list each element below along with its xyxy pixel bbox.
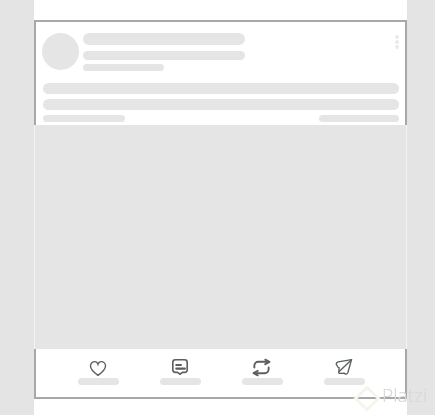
button[interactable]: Like	[78, 360, 119, 385]
button[interactable]: Share	[324, 360, 365, 385]
button[interactable]: More options	[390, 32, 404, 52]
staticText: Platzi	[382, 382, 428, 408]
button[interactable]: Repost	[242, 360, 283, 385]
button[interactable]: Comment	[160, 360, 201, 385]
